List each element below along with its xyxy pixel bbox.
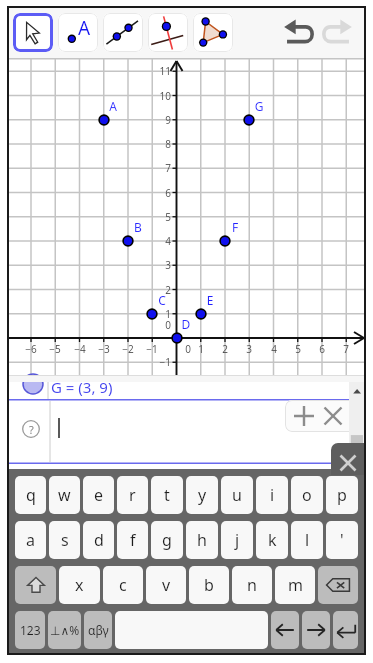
- button[interactable]: d: [83, 521, 114, 559]
- staticText: C: [154, 292, 170, 308]
- staticText: l: [305, 529, 310, 551]
- button[interactable]: 123: [15, 611, 45, 649]
- staticText: 123: [20, 622, 41, 638]
- staticText: G: [251, 98, 267, 114]
- staticText: o: [302, 484, 312, 506]
- staticText: αβγ: [88, 622, 109, 638]
- button[interactable]: Scroll: [349, 382, 366, 470]
- button[interactable]: o: [291, 476, 323, 514]
- button[interactable]: h: [186, 521, 218, 559]
- button[interactable]: s: [49, 521, 80, 559]
- button[interactable]: Move tool: [13, 13, 53, 52]
- button[interactable]: j: [221, 521, 253, 559]
- staticText: h: [197, 529, 207, 551]
- button[interactable]: Clear input: [318, 400, 348, 432]
- button[interactable]: Close keyboard: [331, 443, 366, 475]
- button[interactable]: Right: [302, 611, 330, 649]
- button[interactable]: αβγ: [84, 611, 112, 649]
- button[interactable]: a: [15, 521, 46, 559]
- staticText: −6: [21, 342, 41, 356]
- button[interactable]: Help: [22, 420, 40, 438]
- button[interactable]: Shift: [15, 566, 56, 604]
- staticText: −4: [70, 342, 90, 356]
- button[interactable]: Space: [115, 611, 268, 649]
- staticText: −2: [118, 342, 138, 356]
- staticText: t: [164, 484, 170, 506]
- button[interactable]: k: [256, 521, 288, 559]
- staticText: G = (3, 9): [51, 377, 113, 397]
- staticText: ?: [29, 422, 34, 437]
- staticText: 3: [149, 258, 171, 272]
- staticText: i: [270, 484, 275, 506]
- staticText: u: [232, 484, 242, 506]
- button[interactable]: x: [59, 566, 100, 604]
- staticText: E: [202, 292, 218, 308]
- button[interactable]: l: [291, 521, 323, 559]
- staticText: 6: [312, 342, 332, 356]
- staticText: s: [61, 529, 69, 551]
- button[interactable]: p: [326, 476, 358, 514]
- staticText: j: [235, 529, 240, 551]
- button[interactable]: Backspace: [318, 566, 358, 604]
- button[interactable]: Polygon tool: [193, 13, 233, 52]
- button[interactable]: ': [326, 521, 358, 559]
- button[interactable]: Left: [271, 611, 299, 649]
- button[interactable]: Undo: [282, 16, 318, 48]
- staticText: n: [247, 574, 257, 596]
- button[interactable]: f: [117, 521, 148, 559]
- staticText: a: [26, 529, 35, 551]
- button[interactable]: w: [49, 476, 80, 514]
- button[interactable]: Point tool: [58, 13, 98, 52]
- button[interactable]: u: [221, 476, 253, 514]
- staticText: 1: [149, 307, 171, 321]
- staticText: c: [119, 574, 127, 596]
- staticText: f: [130, 529, 136, 551]
- button[interactable]: ⊥∧%: [48, 611, 81, 649]
- button[interactable]: g: [151, 521, 183, 559]
- button[interactable]: Redo: [318, 16, 354, 48]
- button[interactable]: y: [186, 476, 218, 514]
- staticText: 11: [149, 64, 171, 78]
- staticText: 6: [149, 186, 171, 200]
- staticText: 2: [215, 342, 235, 356]
- staticText: q: [26, 484, 36, 506]
- staticText: 9: [149, 113, 171, 127]
- button[interactable]: i: [256, 476, 288, 514]
- staticText: 5: [288, 342, 308, 356]
- staticText: g: [162, 529, 172, 551]
- staticText: D: [178, 316, 194, 332]
- staticText: B: [130, 219, 146, 235]
- staticText: p: [337, 484, 347, 506]
- button[interactable]: n: [232, 566, 272, 604]
- staticText: −5: [45, 342, 65, 356]
- staticText: A: [105, 98, 121, 114]
- staticText: 10: [149, 89, 171, 103]
- staticText: 7: [336, 342, 356, 356]
- button[interactable]: t: [151, 476, 183, 514]
- button[interactable]: r: [117, 476, 148, 514]
- staticText: 3: [239, 342, 259, 356]
- button[interactable]: Add input row: [289, 400, 319, 432]
- staticText: 0: [178, 342, 198, 356]
- button[interactable]: b: [189, 566, 229, 604]
- staticText: m: [288, 574, 303, 596]
- button[interactable]: c: [103, 566, 143, 604]
- staticText: r: [129, 484, 136, 506]
- staticText: ⊥∧%: [50, 622, 80, 638]
- staticText: 4: [149, 234, 171, 248]
- staticText: d: [94, 529, 104, 551]
- staticText: y: [198, 484, 207, 506]
- staticText: −1: [142, 342, 162, 356]
- staticText: k: [268, 529, 277, 551]
- staticText: ': [340, 529, 344, 551]
- staticText: 5: [149, 210, 171, 224]
- button[interactable]: q: [15, 476, 46, 514]
- button[interactable]: v: [146, 566, 186, 604]
- staticText: e: [94, 484, 104, 506]
- button[interactable]: Perpendicular tool: [148, 13, 188, 52]
- button[interactable]: Enter: [333, 611, 358, 649]
- staticText: F: [227, 219, 243, 235]
- button[interactable]: Line tool: [103, 13, 143, 52]
- button[interactable]: m: [275, 566, 315, 604]
- button[interactable]: e: [83, 476, 114, 514]
